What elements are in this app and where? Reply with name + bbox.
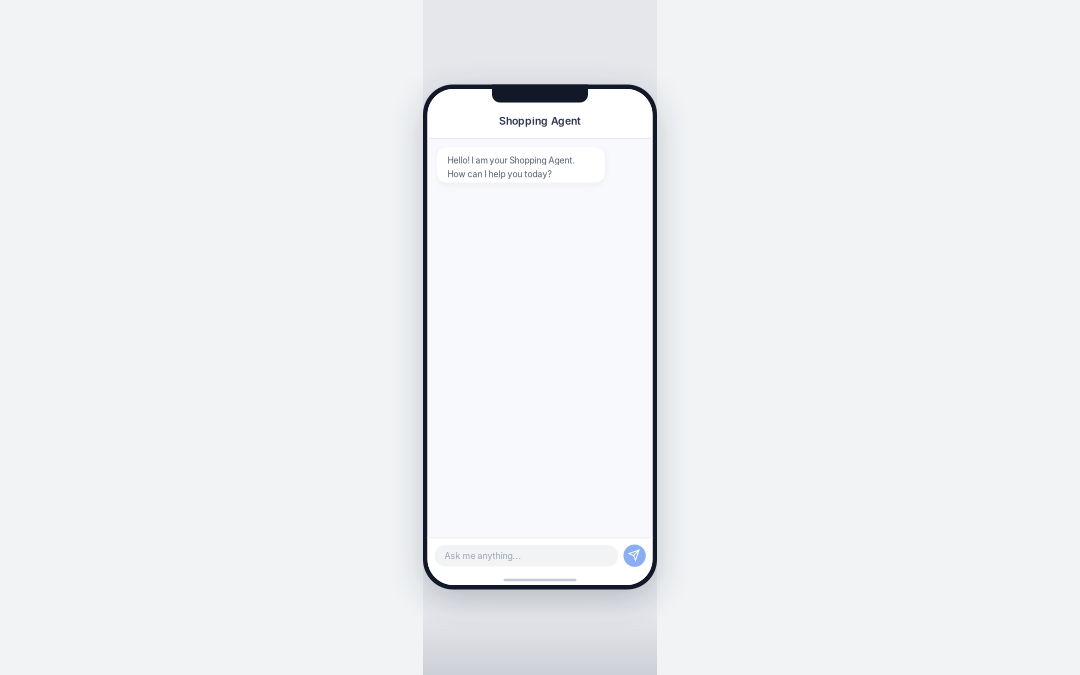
button[interactable]: Send [623, 544, 646, 567]
staticText: Ask me anything... [444, 550, 521, 561]
staticText: Shopping Agent [499, 115, 581, 127]
button[interactable]: Ask me anything... [435, 545, 618, 566]
staticText: Hello! I am your Shopping Agent. [447, 155, 574, 165]
staticText: How can I help you today? [447, 169, 551, 179]
